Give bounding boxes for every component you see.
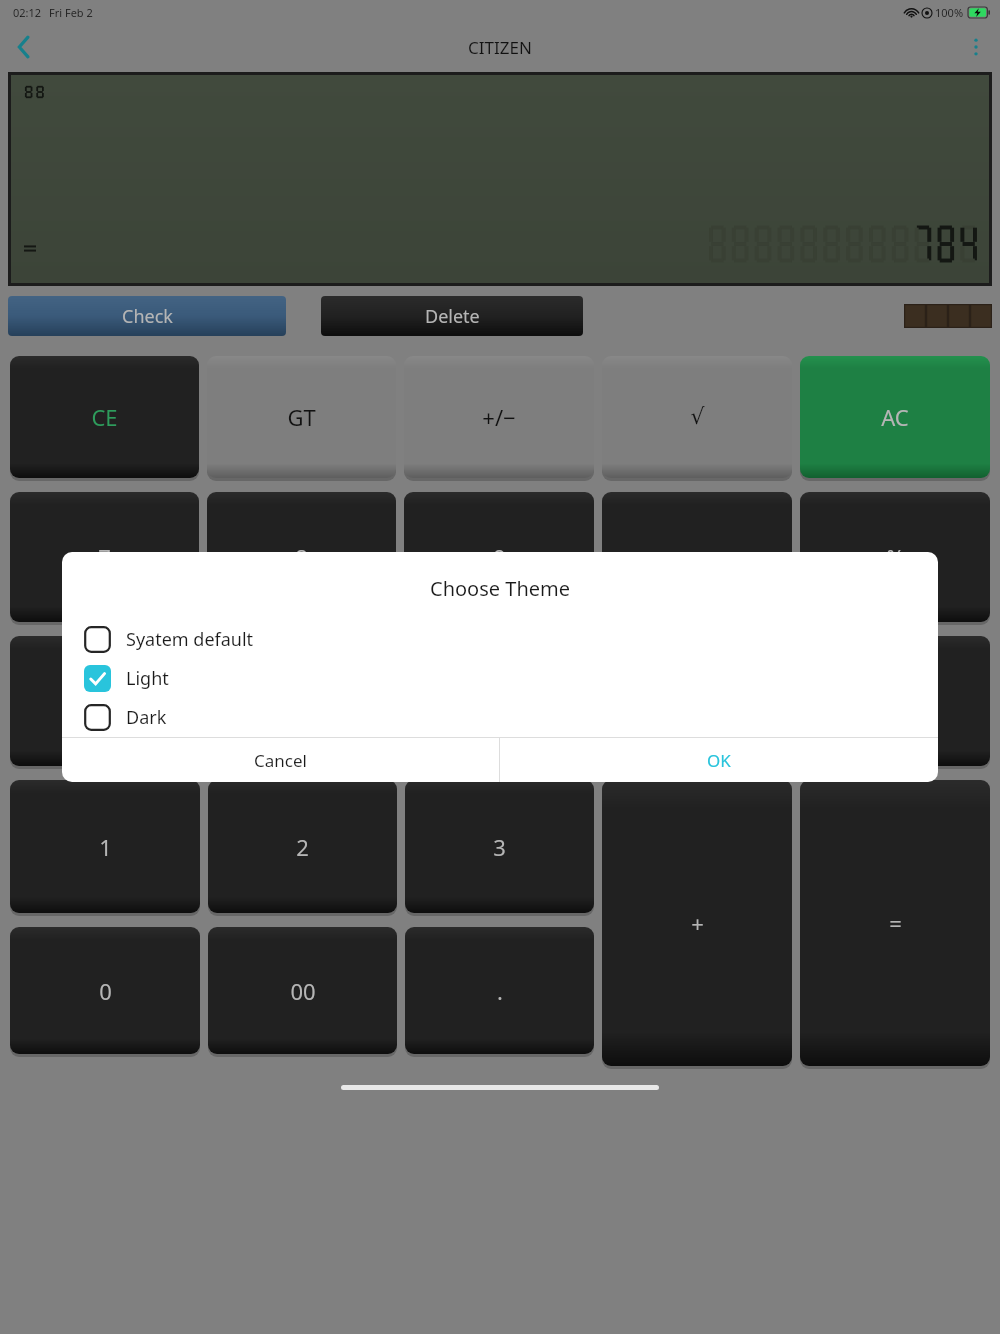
button[interactable]: 00 [208, 927, 397, 1054]
staticText: Dark [126, 705, 167, 730]
staticText: = [889, 908, 902, 938]
button[interactable]: 5 [207, 636, 396, 766]
button[interactable]: Delete [321, 296, 583, 336]
button[interactable]: 0 [10, 927, 200, 1054]
button[interactable]: +/− [404, 356, 594, 478]
button[interactable]: √ [602, 356, 792, 478]
staticText: 1 [99, 832, 112, 862]
button[interactable]: 9 [404, 492, 594, 622]
button[interactable]: 3 [405, 780, 594, 913]
button[interactable]: − [602, 636, 792, 766]
staticText: Check [122, 304, 173, 329]
button[interactable]: × [602, 492, 792, 622]
staticText: % [886, 542, 905, 572]
button[interactable]: 7 [10, 492, 199, 622]
button[interactable]: = [800, 780, 990, 1066]
staticText: . [497, 976, 503, 1006]
staticText: OK [707, 749, 731, 772]
button[interactable]: 8 [207, 492, 396, 622]
staticText: √ [690, 404, 705, 430]
staticText: GT [287, 402, 316, 432]
button[interactable]: AC [800, 356, 990, 478]
staticText: +/− [482, 402, 516, 432]
staticText: Delete [425, 304, 480, 329]
staticText: + [691, 908, 704, 938]
staticText: CE [91, 402, 118, 432]
staticText: 9 [493, 542, 506, 572]
button[interactable]: 4 [10, 636, 199, 766]
staticText: 100% [935, 5, 964, 20]
staticText: AC [881, 402, 909, 432]
staticText: 4 [98, 686, 111, 716]
staticText: Cancel [254, 749, 307, 772]
staticText: 8 [295, 542, 308, 572]
button[interactable]: OK [500, 738, 938, 782]
staticText: Choose Theme [62, 575, 938, 602]
staticText: 02:12 [13, 5, 42, 20]
button[interactable]: Dark [62, 698, 938, 737]
button[interactable]: Back [0, 24, 48, 70]
staticText: 7 [98, 542, 111, 572]
button[interactable]: . [405, 927, 594, 1054]
staticText: 2 [296, 832, 309, 862]
button[interactable]: 1 [10, 780, 200, 913]
button[interactable]: Check [8, 296, 286, 336]
staticText: Syatem default [126, 627, 254, 652]
button[interactable]: 2 [208, 780, 397, 913]
button[interactable]: More options [952, 24, 1000, 70]
staticText: × [691, 542, 704, 572]
button[interactable]: + [602, 780, 792, 1066]
button[interactable]: GT [207, 356, 396, 478]
button[interactable]: ÷ [800, 636, 990, 766]
staticText: 0 [99, 976, 112, 1006]
staticText: Fri Feb 2 [49, 5, 93, 20]
staticText: 00 [290, 976, 316, 1006]
staticText: CITIZEN [468, 36, 532, 59]
button[interactable]: Light [62, 659, 938, 698]
button[interactable]: 6 [404, 636, 594, 766]
button[interactable]: Syatem default [62, 620, 938, 659]
button[interactable]: CE [10, 356, 199, 478]
staticText: Light [126, 666, 169, 691]
button[interactable]: Cancel [62, 738, 499, 782]
button[interactable]: % [800, 492, 990, 622]
staticText: 3 [493, 832, 506, 862]
